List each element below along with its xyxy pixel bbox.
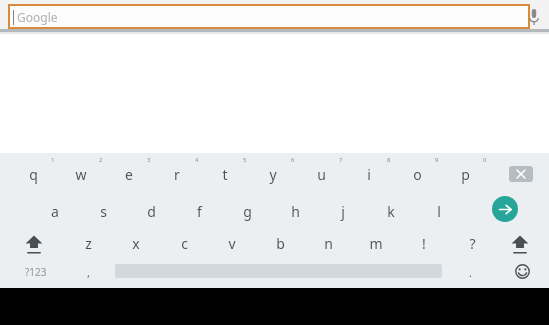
staticText: Google xyxy=(17,9,58,25)
button[interactable]: Google xyxy=(8,4,530,29)
staticText: 2 xyxy=(99,156,103,164)
staticText: 8 xyxy=(387,156,391,164)
staticText: b xyxy=(276,234,285,253)
button[interactable]: f xyxy=(173,194,225,228)
button[interactable]: ?123 xyxy=(8,258,64,286)
staticText: x xyxy=(132,234,140,253)
button[interactable]: Shift xyxy=(8,227,60,261)
button[interactable]: n xyxy=(302,226,354,260)
button[interactable]: m xyxy=(350,226,402,260)
staticText: 4 xyxy=(195,156,199,164)
staticText: ? xyxy=(469,234,476,253)
staticText: 6 xyxy=(291,156,295,164)
staticText: y xyxy=(269,165,277,184)
staticText: o xyxy=(413,165,422,184)
button[interactable]: i xyxy=(343,157,395,191)
button[interactable]: p xyxy=(439,157,491,191)
staticText: s xyxy=(100,202,107,221)
button[interactable]: Voice search xyxy=(519,2,549,31)
button[interactable]: c xyxy=(158,226,210,260)
staticText: a xyxy=(51,202,59,221)
staticText: i xyxy=(367,165,371,184)
staticText: k xyxy=(387,202,395,221)
staticText: . xyxy=(469,265,472,280)
button[interactable]: z xyxy=(62,226,114,260)
staticText: 5 xyxy=(243,156,247,164)
staticText: v xyxy=(228,234,236,253)
button[interactable]: Search xyxy=(479,192,531,226)
staticText: g xyxy=(243,202,252,221)
button[interactable]: ? xyxy=(446,226,498,260)
button[interactable]: Shift xyxy=(494,227,546,261)
button[interactable]: Backspace xyxy=(495,157,547,191)
staticText: ! xyxy=(422,234,426,253)
button[interactable]: ! xyxy=(398,226,450,260)
staticText: ?123 xyxy=(25,265,47,279)
button[interactable]: q xyxy=(7,157,59,191)
button[interactable]: d xyxy=(125,194,177,228)
staticText: , xyxy=(87,265,90,280)
button[interactable]: j xyxy=(317,194,369,228)
button[interactable]: r xyxy=(151,157,203,191)
staticText: 9 xyxy=(435,156,439,164)
staticText: 3 xyxy=(147,156,151,164)
button[interactable]: , xyxy=(62,255,114,289)
staticText: 0 xyxy=(483,156,487,164)
staticText: h xyxy=(291,202,300,221)
button[interactable]: a xyxy=(29,194,81,228)
staticText: n xyxy=(324,234,333,253)
staticText: c xyxy=(181,234,188,253)
staticText: t xyxy=(222,165,228,184)
staticText: 7 xyxy=(339,156,343,164)
button[interactable]: t xyxy=(199,157,251,191)
button[interactable]: l xyxy=(413,194,465,228)
staticText: f xyxy=(197,202,202,221)
staticText: q xyxy=(29,165,38,184)
button[interactable]: g xyxy=(221,194,273,228)
staticText: j xyxy=(341,202,345,221)
button[interactable]: w xyxy=(55,157,107,191)
button[interactable]: b xyxy=(254,226,306,260)
staticText: m xyxy=(369,234,383,253)
button[interactable]: s xyxy=(77,194,129,228)
button[interactable]: h xyxy=(269,194,321,228)
button[interactable]: u xyxy=(295,157,347,191)
button[interactable]: Emoji xyxy=(496,254,548,288)
staticText: l xyxy=(437,202,441,221)
staticText: z xyxy=(85,234,92,253)
staticText: u xyxy=(317,165,326,184)
staticText: e xyxy=(125,165,133,184)
button[interactable]: x xyxy=(110,226,162,260)
button[interactable]: o xyxy=(391,157,443,191)
staticText: p xyxy=(461,165,470,184)
staticText: w xyxy=(75,165,87,184)
staticText: r xyxy=(174,165,180,184)
button[interactable]: v xyxy=(206,226,258,260)
button[interactable]: k xyxy=(365,194,417,228)
button[interactable]: . xyxy=(444,255,496,289)
staticText: 1 xyxy=(51,156,55,164)
button[interactable]: e xyxy=(103,157,155,191)
button[interactable]: y xyxy=(247,157,299,191)
staticText: d xyxy=(147,202,156,221)
